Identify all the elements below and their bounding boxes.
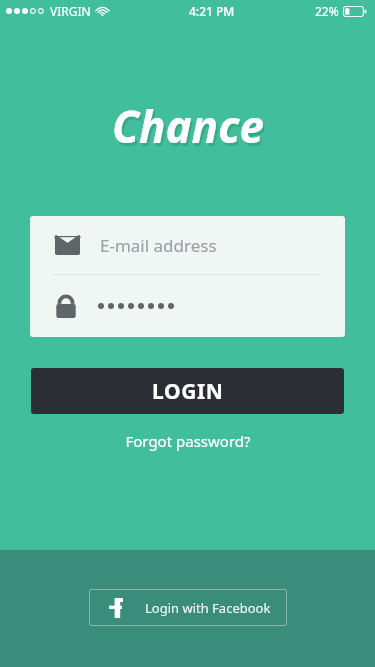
staticText: Chance	[114, 99, 266, 159]
button[interactable]: Facebook	[89, 589, 287, 626]
other: Facebook	[109, 598, 123, 618]
staticText: 4:21 PM	[189, 3, 235, 19]
staticText: Login with Facebook	[145, 599, 271, 617]
button[interactable]: LOGIN	[31, 368, 344, 414]
staticText: Chance	[112, 96, 264, 156]
staticText: 22%	[315, 3, 339, 19]
staticText: E-mail address	[100, 234, 217, 257]
button[interactable]	[30, 275, 345, 337]
button[interactable]: E-mail address	[30, 216, 345, 274]
button[interactable]: Forgot password?	[115, 427, 261, 455]
staticText: LOGIN	[152, 377, 224, 406]
staticText: VIRGIN	[50, 3, 91, 19]
staticText: Forgot password?	[125, 431, 251, 451]
